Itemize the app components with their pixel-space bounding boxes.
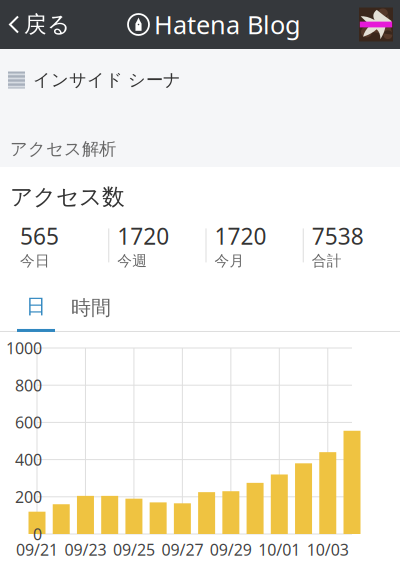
staticText: 1720 [117, 221, 169, 251]
staticText: 09/25 [113, 539, 155, 560]
staticText: アクセス解析 [10, 138, 116, 160]
staticText: 09/29 [210, 539, 252, 560]
staticText: 09/27 [161, 539, 203, 560]
button[interactable]: 日 [17, 284, 55, 332]
staticText: アクセス数 [10, 183, 125, 211]
staticText: 10/03 [307, 539, 349, 560]
staticText: 800 [15, 375, 42, 396]
staticText: 戻る [24, 11, 70, 38]
staticText: 日 [26, 294, 46, 319]
staticText: 565 [20, 221, 59, 251]
staticText: Hatena Blog [154, 8, 301, 41]
button[interactable]: Hatena Blog [128, 0, 301, 49]
staticText: インサイド シーナ [33, 69, 181, 91]
staticText: 今日 [20, 252, 50, 270]
staticText: 09/21 [16, 539, 58, 560]
staticText: 400 [15, 449, 42, 470]
button[interactable]: Account [359, 7, 400, 41]
staticText: 時間 [71, 296, 111, 320]
staticText: 600 [15, 412, 42, 433]
staticText: 今月 [214, 252, 244, 270]
button[interactable]: インサイド シーナ [0, 65, 400, 95]
button[interactable]: 時間 [71, 285, 111, 330]
staticText: 7538 [312, 221, 364, 251]
staticText: 0 [33, 523, 42, 545]
staticText: 1000 [6, 337, 42, 359]
staticText: 合計 [312, 252, 342, 270]
staticText: 10/01 [258, 539, 300, 560]
staticText: 今週 [117, 252, 147, 270]
staticText: 1720 [214, 221, 266, 251]
staticText: 200 [15, 486, 42, 507]
button[interactable]: 戻る [0, 0, 70, 49]
staticText: 09/23 [64, 539, 106, 560]
